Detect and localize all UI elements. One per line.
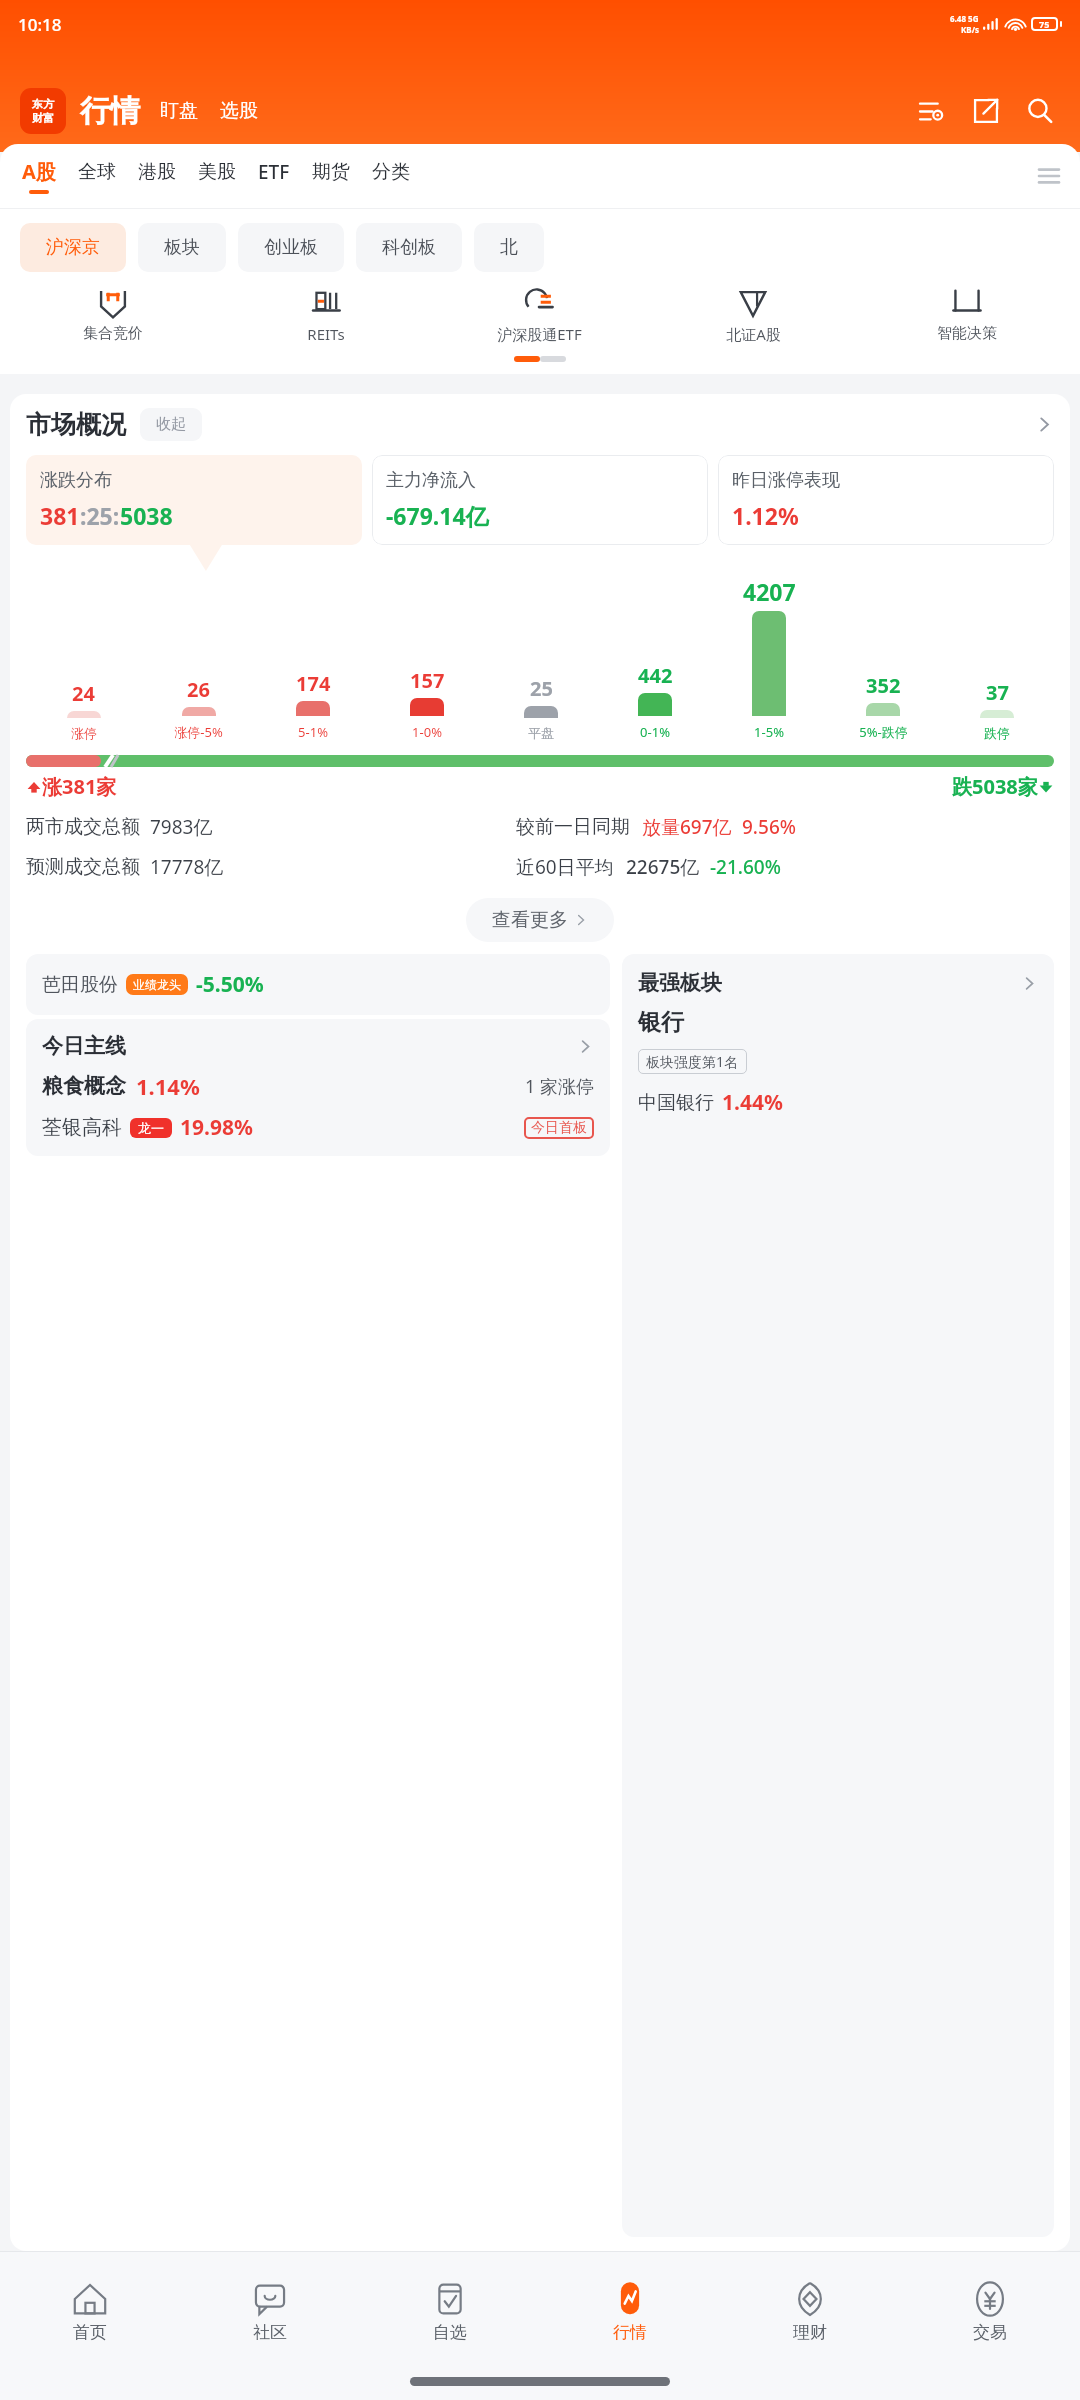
- staticText: -21.60%: [710, 854, 781, 880]
- button[interactable]: 分类: [372, 160, 410, 193]
- staticText: 市场概况: [26, 409, 126, 440]
- button[interactable]: 沪深股通ETF: [432, 286, 646, 344]
- button[interactable]: 集合竞价: [6, 286, 219, 343]
- button[interactable]: More tabs: [1032, 159, 1066, 193]
- staticText: 业绩龙头: [133, 977, 181, 992]
- staticText: 37: [986, 679, 1009, 706]
- button[interactable]: Search: [1020, 91, 1060, 131]
- button[interactable]: Share: [966, 91, 1006, 131]
- button[interactable]: 市场概况: [26, 408, 1054, 441]
- button[interactable]: 交易: [900, 2260, 1080, 2362]
- staticText: KB/s: [961, 24, 979, 35]
- button[interactable]: ETF: [258, 159, 290, 194]
- staticText: 22675亿: [626, 854, 700, 880]
- staticText: 港股: [138, 160, 176, 184]
- button[interactable]: 期货: [312, 160, 350, 193]
- button[interactable]: 美股: [198, 160, 236, 193]
- staticText: 中国银行: [638, 1091, 714, 1115]
- button[interactable]: 选股: [218, 93, 260, 129]
- button[interactable]: 查看更多: [466, 898, 614, 942]
- button[interactable]: 北证A股: [646, 286, 860, 344]
- staticText: 24: [72, 680, 95, 707]
- staticText: 银行: [638, 1008, 684, 1037]
- button[interactable]: 创业板: [238, 223, 344, 272]
- button[interactable]: 主力净流入: [372, 455, 708, 545]
- staticText: 442: [638, 662, 673, 689]
- staticText: 6.48 5G: [950, 13, 979, 24]
- button[interactable]: 板块: [138, 223, 226, 272]
- staticText: 较前一日同期: [516, 815, 630, 839]
- button[interactable]: 北: [474, 223, 544, 272]
- button[interactable]: A股: [22, 158, 56, 194]
- staticText: 放量697亿: [642, 814, 732, 840]
- staticText: 381: [40, 500, 80, 531]
- staticText: 交易: [973, 2322, 1007, 2343]
- button[interactable]: 理财: [720, 2260, 900, 2362]
- staticText: 理财: [793, 2322, 827, 2343]
- button[interactable]: 盯盘: [158, 93, 200, 129]
- button[interactable]: 今日主线: [26, 1019, 610, 1156]
- staticText: 全球: [78, 160, 116, 184]
- staticText: 两市成交总额: [26, 815, 140, 839]
- staticText: 盯盘: [160, 99, 198, 123]
- button[interactable]: 收起: [140, 408, 202, 441]
- staticText: 1.44%: [722, 1088, 783, 1117]
- button[interactable]: 首页: [0, 2260, 180, 2362]
- staticText: 跌5038家: [952, 773, 1038, 800]
- staticText: 昨日涨停表现: [732, 469, 840, 492]
- staticText: -5.50%: [196, 970, 264, 999]
- staticText: 选股: [220, 99, 258, 123]
- staticText: 期货: [312, 160, 350, 184]
- staticText: 0-1%: [640, 723, 670, 741]
- staticText: 352: [866, 672, 901, 699]
- staticText: 9.56%: [742, 814, 796, 840]
- staticText: 粮食概念: [42, 1073, 126, 1099]
- staticText: 行情: [613, 2322, 647, 2343]
- staticText: 19.98%: [180, 1113, 253, 1142]
- staticText: 174: [296, 670, 331, 697]
- staticText: 美股: [198, 160, 236, 184]
- staticText: 涨停: [71, 725, 97, 741]
- button[interactable]: 芭田股份: [26, 954, 610, 1015]
- staticText: 最强板块: [638, 970, 722, 996]
- staticText: 北: [500, 236, 518, 259]
- staticText: 1 家涨停: [525, 1074, 594, 1099]
- staticText: -679.14亿: [386, 500, 489, 531]
- staticText: 龙一: [138, 1120, 164, 1136]
- staticText: 东方: [32, 97, 54, 111]
- button[interactable]: 港股: [138, 160, 176, 193]
- staticText: 今日主线: [42, 1033, 126, 1059]
- staticText: 预测成交总额: [26, 855, 140, 879]
- staticText: 4207: [743, 576, 796, 607]
- button[interactable]: 最强板块: [622, 954, 1054, 2237]
- staticText: 26: [187, 676, 210, 703]
- staticText: 1-0%: [412, 723, 442, 741]
- button[interactable]: 行情: [540, 2260, 720, 2362]
- staticText: 行情: [80, 92, 140, 130]
- staticText: 涨停-5%: [174, 723, 223, 741]
- staticText: 首页: [73, 2322, 107, 2343]
- button[interactable]: 涨跌分布: [26, 455, 362, 545]
- staticText: 跌停: [984, 725, 1010, 741]
- staticText: 荃银高科: [42, 1115, 122, 1140]
- staticText: 5%-跌停: [859, 723, 908, 741]
- button[interactable]: 沪深京: [20, 223, 126, 272]
- button[interactable]: 科创板: [356, 223, 462, 272]
- button[interactable]: 智能决策: [860, 286, 1074, 343]
- button[interactable]: 社区: [180, 2260, 360, 2362]
- staticText: 自选: [433, 2322, 467, 2343]
- staticText: 近60日平均: [516, 854, 614, 880]
- staticText: 沪深京: [46, 236, 100, 259]
- staticText: ETF: [258, 159, 290, 185]
- button[interactable]: 昨日涨停表现: [718, 455, 1054, 545]
- staticText: A股: [22, 158, 56, 185]
- staticText: 北证A股: [726, 324, 781, 344]
- button[interactable]: 自选: [360, 2260, 540, 2362]
- button[interactable]: Settings list: [912, 91, 952, 131]
- staticText: 25: [530, 675, 553, 702]
- button[interactable]: 全球: [78, 160, 116, 193]
- staticText: 5-1%: [298, 723, 328, 741]
- staticText: 涨381家: [42, 773, 117, 800]
- button[interactable]: REITs: [219, 286, 432, 344]
- staticText: 收起: [156, 415, 186, 434]
